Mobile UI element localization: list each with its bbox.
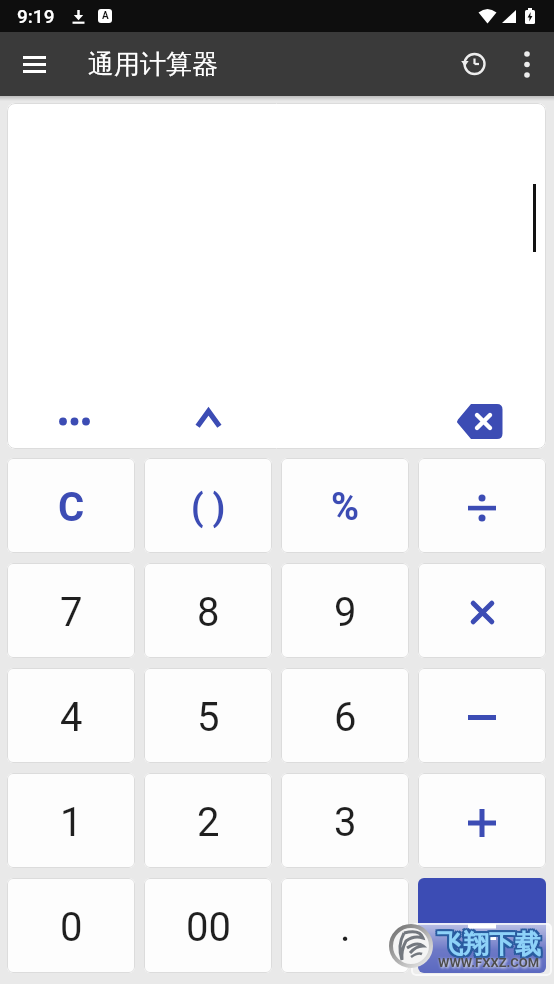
button[interactable] — [512, 49, 542, 79]
staticText: 0 — [60, 904, 83, 951]
staticText: 2 — [197, 799, 220, 846]
staticText: 6 — [334, 694, 357, 741]
staticText: 00 — [186, 904, 231, 951]
button[interactable]: 3 — [281, 773, 409, 868]
button[interactable]: C — [7, 458, 135, 553]
staticText: 飞翔下载 — [435, 928, 539, 961]
button[interactable] — [418, 563, 546, 658]
button[interactable]: 9 — [281, 563, 409, 658]
staticText: 飞翔下载 — [435, 926, 539, 959]
staticText: 飞翔下载 — [439, 928, 543, 961]
button[interactable] — [418, 878, 546, 973]
staticText: % — [331, 485, 360, 530]
staticText: 飞翔下载 — [435, 930, 539, 963]
staticText: 4 — [60, 694, 83, 741]
button[interactable] — [44, 406, 104, 436]
staticText: 7 — [60, 589, 83, 636]
button[interactable] — [178, 398, 238, 438]
button[interactable]: . — [281, 878, 409, 973]
button[interactable]: 1 — [7, 773, 135, 868]
staticText: . — [340, 904, 351, 951]
staticText: 9 — [334, 589, 357, 636]
button[interactable]: 8 — [144, 563, 272, 658]
button[interactable]: ( ) — [144, 458, 272, 553]
button[interactable]: 00 — [144, 878, 272, 973]
staticText: WWW.FXXZ.COM — [438, 955, 540, 970]
staticText: 5 — [197, 694, 220, 741]
staticText: 飞翔下载 — [439, 926, 543, 959]
button[interactable]: 2 — [144, 773, 272, 868]
staticText: 飞翔下载 — [437, 928, 541, 961]
button[interactable] — [454, 44, 494, 84]
staticText: 飞翔下载 — [439, 930, 543, 963]
button[interactable] — [418, 773, 546, 868]
staticText: ( ) — [191, 487, 226, 529]
button[interactable]: 6 — [281, 668, 409, 763]
button[interactable]: % — [281, 458, 409, 553]
button[interactable]: 0 — [7, 878, 135, 973]
button[interactable]: 5 — [144, 668, 272, 763]
button[interactable] — [443, 396, 503, 446]
staticText: 1 — [60, 799, 83, 846]
staticText: 飞翔下载 — [437, 930, 541, 963]
staticText: 飞翔下载 — [437, 926, 541, 959]
staticText: C — [58, 484, 85, 531]
staticText: 9:19 — [17, 5, 55, 27]
button[interactable]: 7 — [7, 563, 135, 658]
staticText: 3 — [334, 799, 357, 846]
button[interactable] — [418, 458, 546, 553]
button[interactable] — [23, 46, 59, 82]
staticText: 8 — [197, 589, 220, 636]
button[interactable]: 4 — [7, 668, 135, 763]
staticText: A — [102, 10, 109, 22]
staticText: 通用计算器 — [88, 48, 218, 81]
button[interactable] — [418, 668, 546, 763]
